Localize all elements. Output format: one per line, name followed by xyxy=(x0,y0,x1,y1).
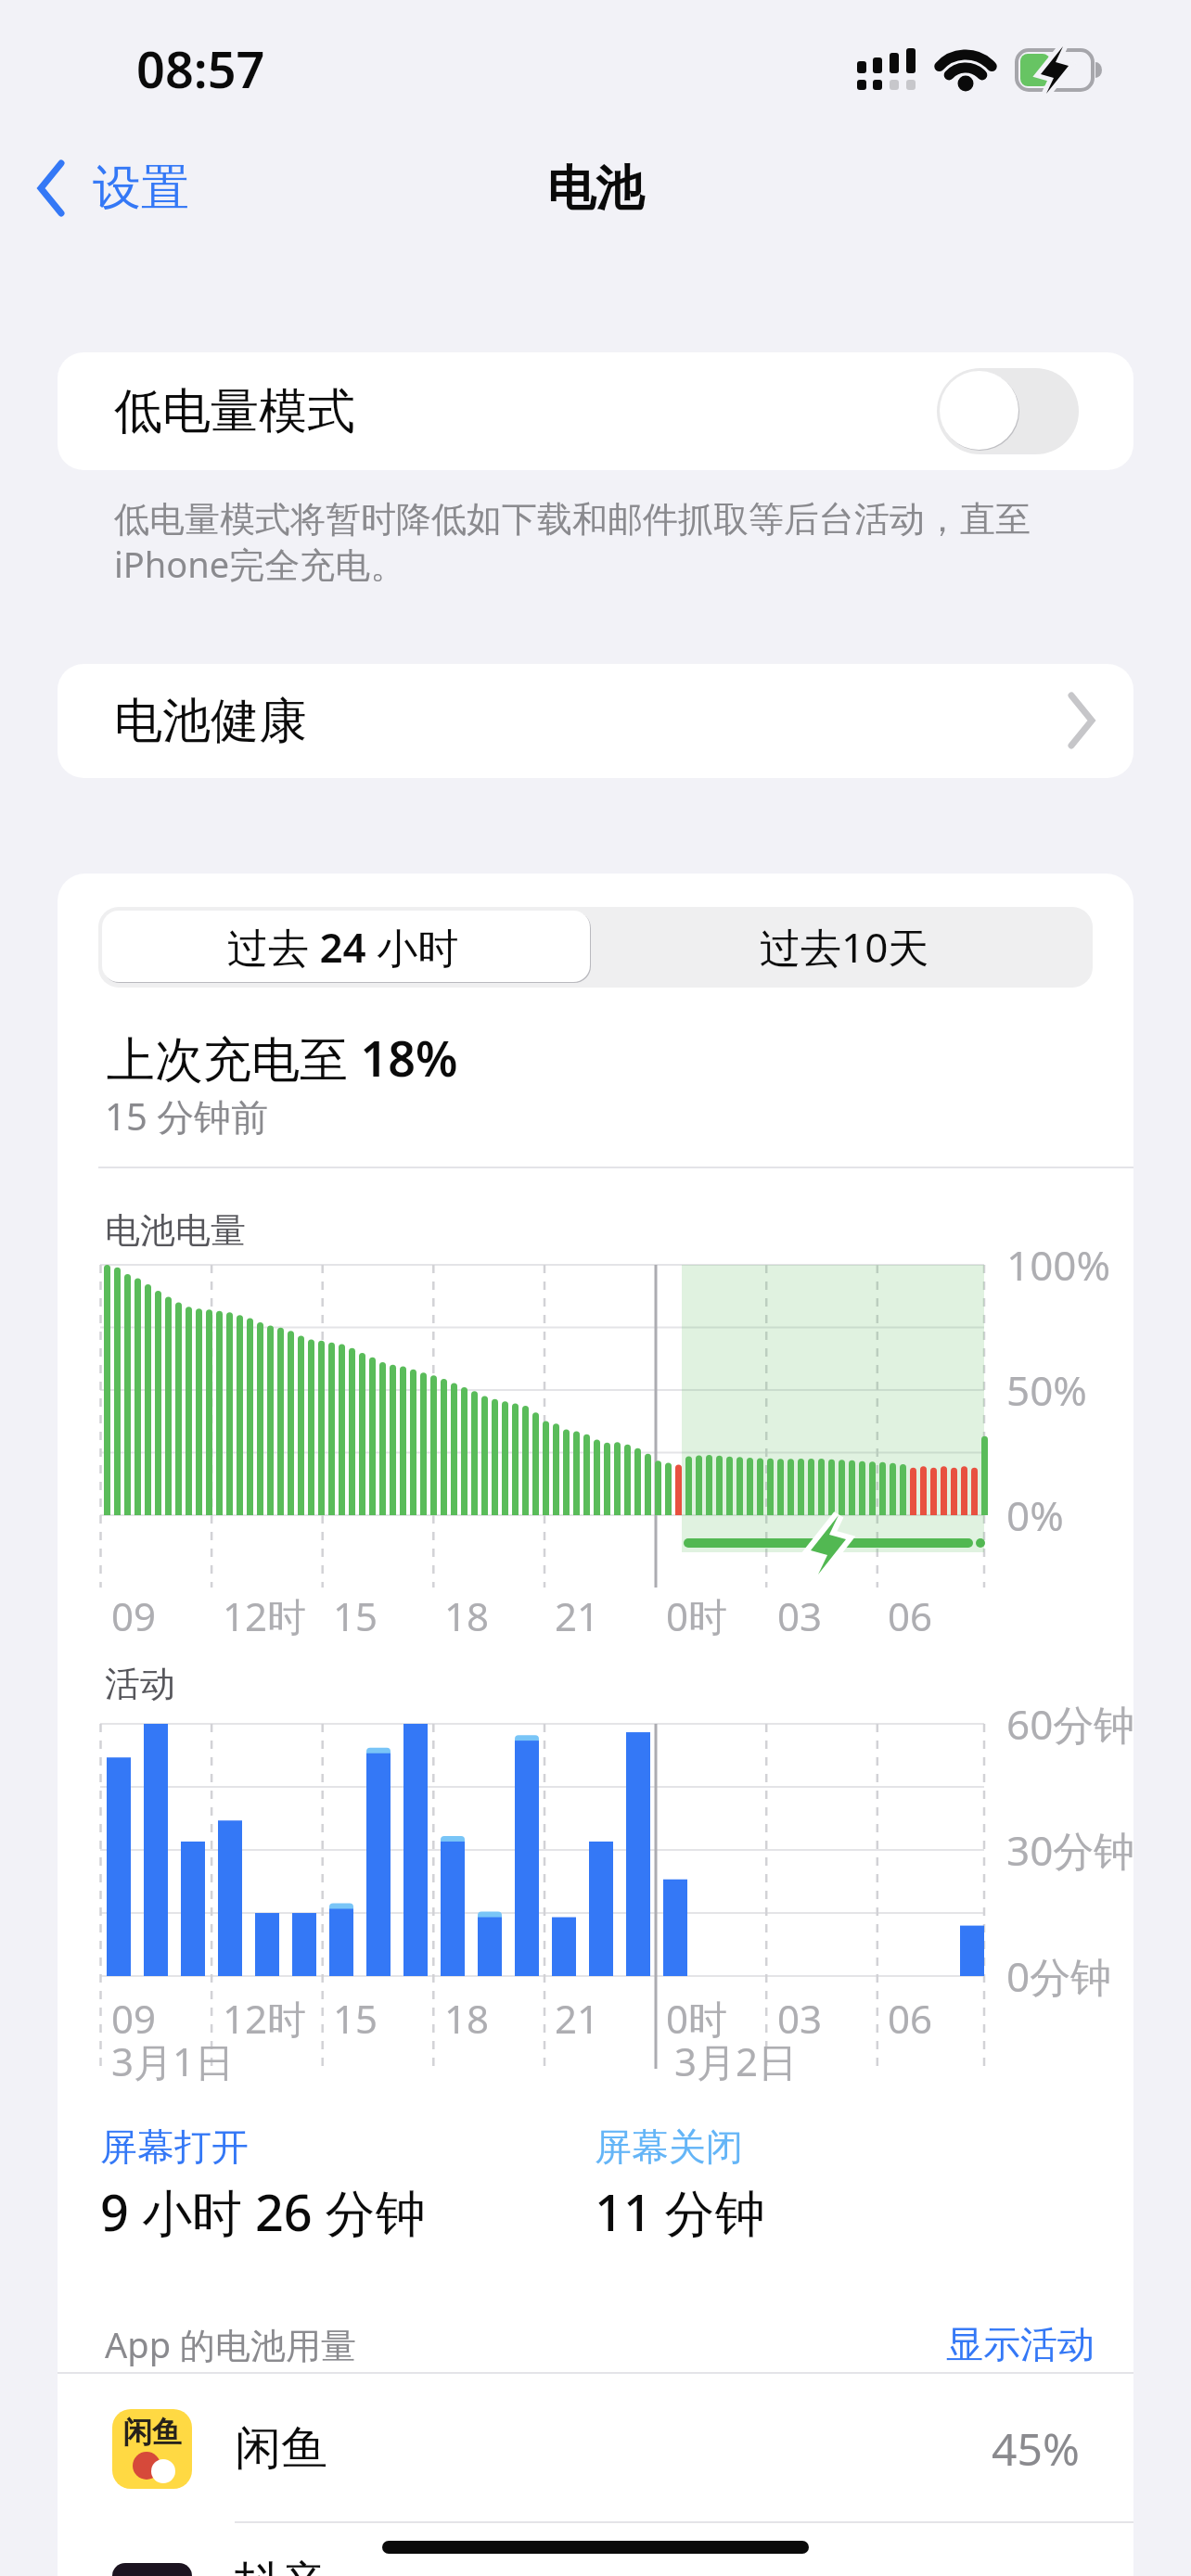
staticText: 9 小时 26 分钟 xyxy=(100,2177,426,2246)
staticText: 过去 24 小时 xyxy=(227,919,459,975)
staticText: 0时 xyxy=(666,1992,728,2045)
staticText: 21 xyxy=(555,1589,600,1642)
staticText: 活动 xyxy=(105,1662,175,1706)
staticText: 上次充电至 18% xyxy=(107,1025,458,1090)
button[interactable]: 闲鱼 xyxy=(58,2374,1133,2523)
button[interactable] xyxy=(98,907,595,988)
button[interactable]: 显示活动 xyxy=(909,2307,1095,2381)
staticText: 18 xyxy=(444,1589,490,1642)
staticText: 100% xyxy=(1006,1237,1111,1293)
staticText: 15 分钟前 xyxy=(105,1090,269,1141)
staticText: 0% xyxy=(1006,1487,1064,1543)
staticText: 电池电量 xyxy=(105,1208,246,1253)
staticText: 抖音 xyxy=(235,2555,327,2576)
staticText: 设置 xyxy=(93,158,189,219)
staticText: 3月1日 xyxy=(111,2034,235,2087)
button[interactable] xyxy=(937,368,1079,454)
staticText: 18 xyxy=(444,1992,490,2045)
staticText: 06 xyxy=(888,1589,933,1642)
staticText: App 的电池用量 xyxy=(105,2320,356,2368)
staticText: 屏幕关闭 xyxy=(595,2123,743,2170)
staticText: 12时 xyxy=(223,1589,307,1642)
staticText: 45% xyxy=(992,2418,1080,2479)
staticText: 屏幕打开 xyxy=(100,2123,249,2170)
staticText: 08:57 xyxy=(136,34,265,103)
button[interactable]: 设置 xyxy=(28,147,241,230)
button[interactable] xyxy=(595,907,1093,988)
staticText: 11 分钟 xyxy=(595,2177,765,2246)
staticText: 0时 xyxy=(666,1589,728,1642)
staticText: 03 xyxy=(777,1992,823,2045)
staticText: 显示活动 xyxy=(946,2321,1095,2367)
staticText: iPhone完全充电。 xyxy=(114,540,406,588)
staticText: 60分钟 xyxy=(1006,1696,1135,1752)
staticText: 15 xyxy=(333,1589,378,1642)
staticText: 30分钟 xyxy=(1006,1822,1135,1878)
staticText: 50% xyxy=(1006,1362,1087,1418)
staticText: 09 xyxy=(111,1992,157,2045)
staticText: 03 xyxy=(777,1589,823,1642)
staticText: 低电量模式将暂时降低如下载和邮件抓取等后台活动，直至 xyxy=(114,497,1031,542)
staticText: 15 xyxy=(333,1992,378,2045)
staticText: 12时 xyxy=(223,1992,307,2045)
staticText: 闲鱼 xyxy=(122,2414,182,2451)
staticText: 3月2日 xyxy=(674,2034,798,2087)
staticText: 21 xyxy=(555,1992,600,2045)
staticText: 0分钟 xyxy=(1006,1948,1112,2004)
staticText: 闲鱼 xyxy=(235,2419,327,2478)
staticText: 低电量模式 xyxy=(114,381,355,442)
staticText: 电池健康 xyxy=(114,691,307,752)
staticText: 电池 xyxy=(547,159,644,220)
button[interactable]: 电池健康 xyxy=(58,664,1133,778)
staticText: 06 xyxy=(888,1992,933,2045)
staticText: 过去10天 xyxy=(760,919,929,975)
button[interactable]: 低电量模式 xyxy=(58,352,1133,470)
staticText: 09 xyxy=(111,1589,157,1642)
